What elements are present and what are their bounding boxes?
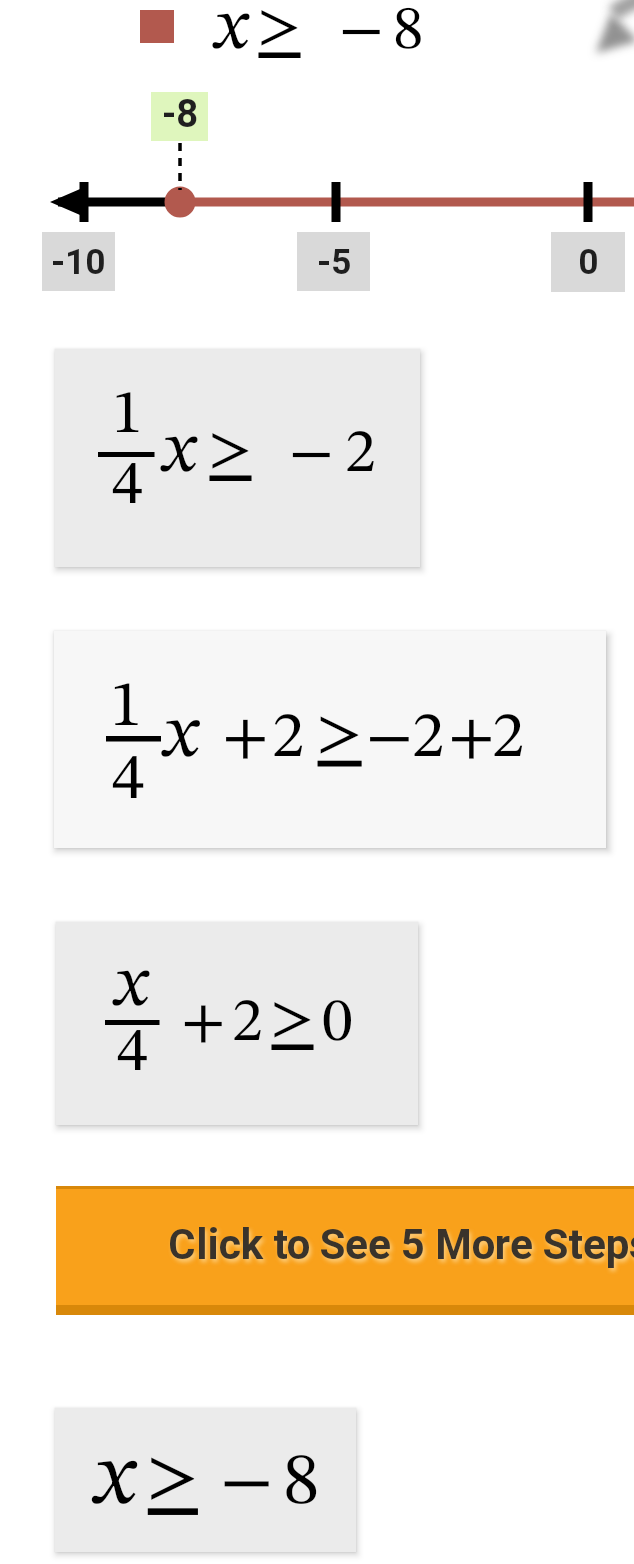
button[interactable] <box>55 1408 356 1552</box>
button[interactable] <box>54 631 606 848</box>
button[interactable] <box>56 1186 634 1315</box>
button[interactable] <box>55 349 420 567</box>
button[interactable] <box>56 922 418 1125</box>
